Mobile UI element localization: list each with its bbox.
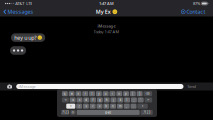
button[interactable]: o xyxy=(116,91,122,96)
staticText: ⇧ xyxy=(70,105,72,108)
staticText: u xyxy=(105,92,107,95)
button[interactable]: b xyxy=(103,104,109,109)
staticText: ; xyxy=(133,98,134,102)
button[interactable]: c xyxy=(90,104,96,109)
staticText: Contact xyxy=(186,8,205,15)
staticText: j xyxy=(113,98,114,102)
button[interactable]: k xyxy=(117,97,123,102)
staticText: r xyxy=(85,92,86,95)
staticText: iMessage xyxy=(19,84,36,89)
staticText: Today 1:47 AM xyxy=(93,29,119,34)
staticText: Messages xyxy=(7,8,33,15)
staticText: e xyxy=(77,92,79,95)
button[interactable]: ' xyxy=(138,97,144,102)
staticText: s xyxy=(79,98,80,102)
staticText: l xyxy=(127,98,128,102)
staticText: q xyxy=(64,92,66,95)
button[interactable]: space xyxy=(77,110,140,115)
button[interactable]: ↵ xyxy=(144,97,152,102)
staticText: 87% xyxy=(193,1,200,6)
button[interactable]: y xyxy=(96,91,102,96)
staticText: My Ex xyxy=(96,8,111,15)
button[interactable]: a xyxy=(70,97,76,102)
staticText: .?123 xyxy=(61,111,69,114)
button[interactable]: Send xyxy=(183,82,199,90)
button[interactable]: Messages xyxy=(0,7,37,16)
staticText: ⌫ xyxy=(146,92,150,95)
staticText: Send xyxy=(187,84,195,89)
staticText: ☺ xyxy=(71,111,74,114)
button[interactable]: ; xyxy=(131,97,137,102)
button[interactable]: v xyxy=(97,104,102,109)
staticText: hey u up? xyxy=(14,34,36,41)
button[interactable]: ] xyxy=(137,91,143,96)
staticText: d xyxy=(85,98,87,102)
staticText: k xyxy=(120,98,121,102)
staticText: g xyxy=(99,98,101,102)
staticText: ⇧ xyxy=(141,105,143,108)
staticText: ' xyxy=(140,98,141,102)
staticText: ↵ xyxy=(147,98,149,101)
staticText: t xyxy=(92,92,93,95)
staticText: , xyxy=(126,104,127,108)
button[interactable]: w xyxy=(69,91,75,96)
staticText: . xyxy=(133,104,134,108)
button[interactable]: q xyxy=(62,91,68,96)
staticText: w xyxy=(71,92,73,95)
button[interactable]: p xyxy=(123,91,129,96)
button[interactable]: l xyxy=(124,97,130,102)
staticText: x xyxy=(85,104,86,108)
staticText: y xyxy=(98,92,99,95)
staticText: v xyxy=(99,104,100,108)
staticText: i xyxy=(112,92,113,95)
button[interactable]: x xyxy=(83,104,89,109)
staticText: 1:47 AM xyxy=(99,1,114,6)
button[interactable]: i xyxy=(109,91,115,96)
staticText: c xyxy=(92,104,93,108)
staticText: space xyxy=(105,111,112,114)
button[interactable]: ⇧ xyxy=(66,104,75,109)
staticText: n xyxy=(112,104,114,108)
staticText: b xyxy=(105,104,107,108)
button[interactable]: j xyxy=(111,97,116,102)
button[interactable]: Take photo xyxy=(7,84,12,89)
button[interactable]: n xyxy=(110,104,116,109)
button[interactable]: , xyxy=(124,104,130,109)
button[interactable]: d xyxy=(83,97,89,102)
staticText: AT&T LTE xyxy=(14,1,32,6)
staticText: z xyxy=(79,104,80,108)
button[interactable]: u xyxy=(103,91,109,96)
staticText: .?123 xyxy=(143,111,151,114)
staticText: o xyxy=(118,92,120,95)
staticText: h xyxy=(106,98,108,102)
staticText: m xyxy=(119,104,121,108)
button[interactable]: f xyxy=(90,97,96,102)
staticText: f xyxy=(93,98,94,102)
button[interactable]: [ xyxy=(130,91,136,96)
staticText: a xyxy=(72,98,73,102)
button[interactable]: ⇥ xyxy=(62,97,69,102)
staticText: ⇥ xyxy=(64,98,66,101)
button[interactable]: z xyxy=(76,104,82,109)
button[interactable]: g xyxy=(97,97,103,102)
button[interactable]: .?123 xyxy=(141,110,153,115)
button[interactable]: ☺ xyxy=(70,110,76,115)
button[interactable]: s xyxy=(76,97,82,102)
button[interactable]: h xyxy=(104,97,110,102)
button[interactable]: . xyxy=(131,104,136,109)
button[interactable]: ⇧ xyxy=(137,104,148,109)
staticText: p xyxy=(125,92,127,95)
button[interactable]: ⌫ xyxy=(143,91,152,96)
button[interactable]: t xyxy=(89,91,95,96)
button[interactable]: r xyxy=(82,91,88,96)
button[interactable]: Contact xyxy=(177,7,213,16)
staticText: iMessage xyxy=(97,23,115,29)
button[interactable]: .?123 xyxy=(61,110,69,115)
button[interactable]: m xyxy=(117,104,123,109)
button[interactable]: e xyxy=(75,91,81,96)
